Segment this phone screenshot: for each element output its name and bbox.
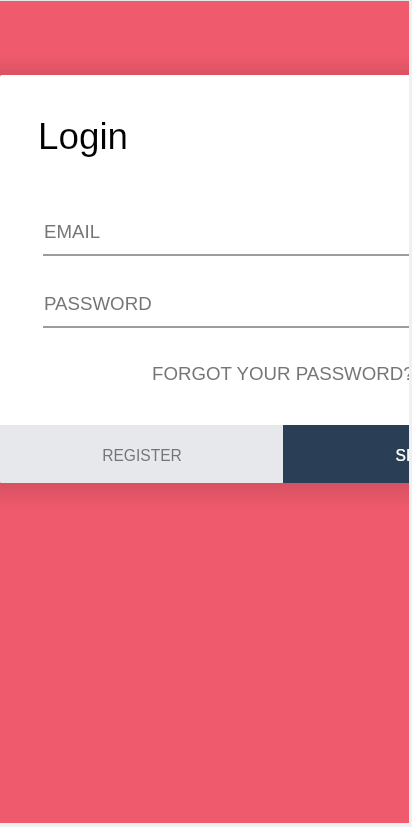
button[interactable]: PASSWORD	[43, 288, 409, 328]
staticText: Login	[38, 116, 129, 157]
button[interactable]: REGISTER	[0, 425, 283, 483]
button[interactable]: FORGOT YOUR PASSWORD?	[0, 356, 409, 390]
staticText: EMAIL	[44, 221, 101, 242]
staticText: PASSWORD	[44, 293, 152, 314]
staticText: FORGOT YOUR PASSWORD?	[152, 363, 409, 384]
button[interactable]: EMAIL	[43, 216, 409, 256]
staticText: SIGN IN	[395, 447, 409, 464]
staticText: REGISTER	[102, 447, 182, 464]
button[interactable]: SIGN IN	[283, 425, 409, 483]
